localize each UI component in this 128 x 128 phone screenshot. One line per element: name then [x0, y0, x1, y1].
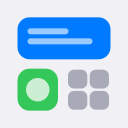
button[interactable]: Messages [17, 17, 110, 59]
button[interactable]: Apps [68, 69, 110, 111]
button[interactable]: Record [17, 69, 58, 111]
